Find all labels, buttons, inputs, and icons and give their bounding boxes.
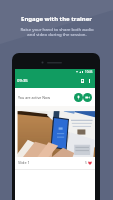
staticText: Slide 1 [18, 160, 30, 165]
button[interactable]: Present screen [78, 77, 86, 85]
staticText: You are active Now [18, 95, 50, 100]
staticText: Raise your hand to share both audio and … [20, 26, 94, 38]
button[interactable]: Camera [83, 93, 92, 102]
staticText: 10:46 [85, 70, 93, 74]
button[interactable]: More options [85, 77, 93, 85]
button[interactable]: Microphone [74, 93, 83, 102]
staticText: 5 [85, 161, 87, 165]
staticText: 09:35 [17, 78, 28, 84]
staticText: Engage with the trainer [21, 15, 92, 23]
